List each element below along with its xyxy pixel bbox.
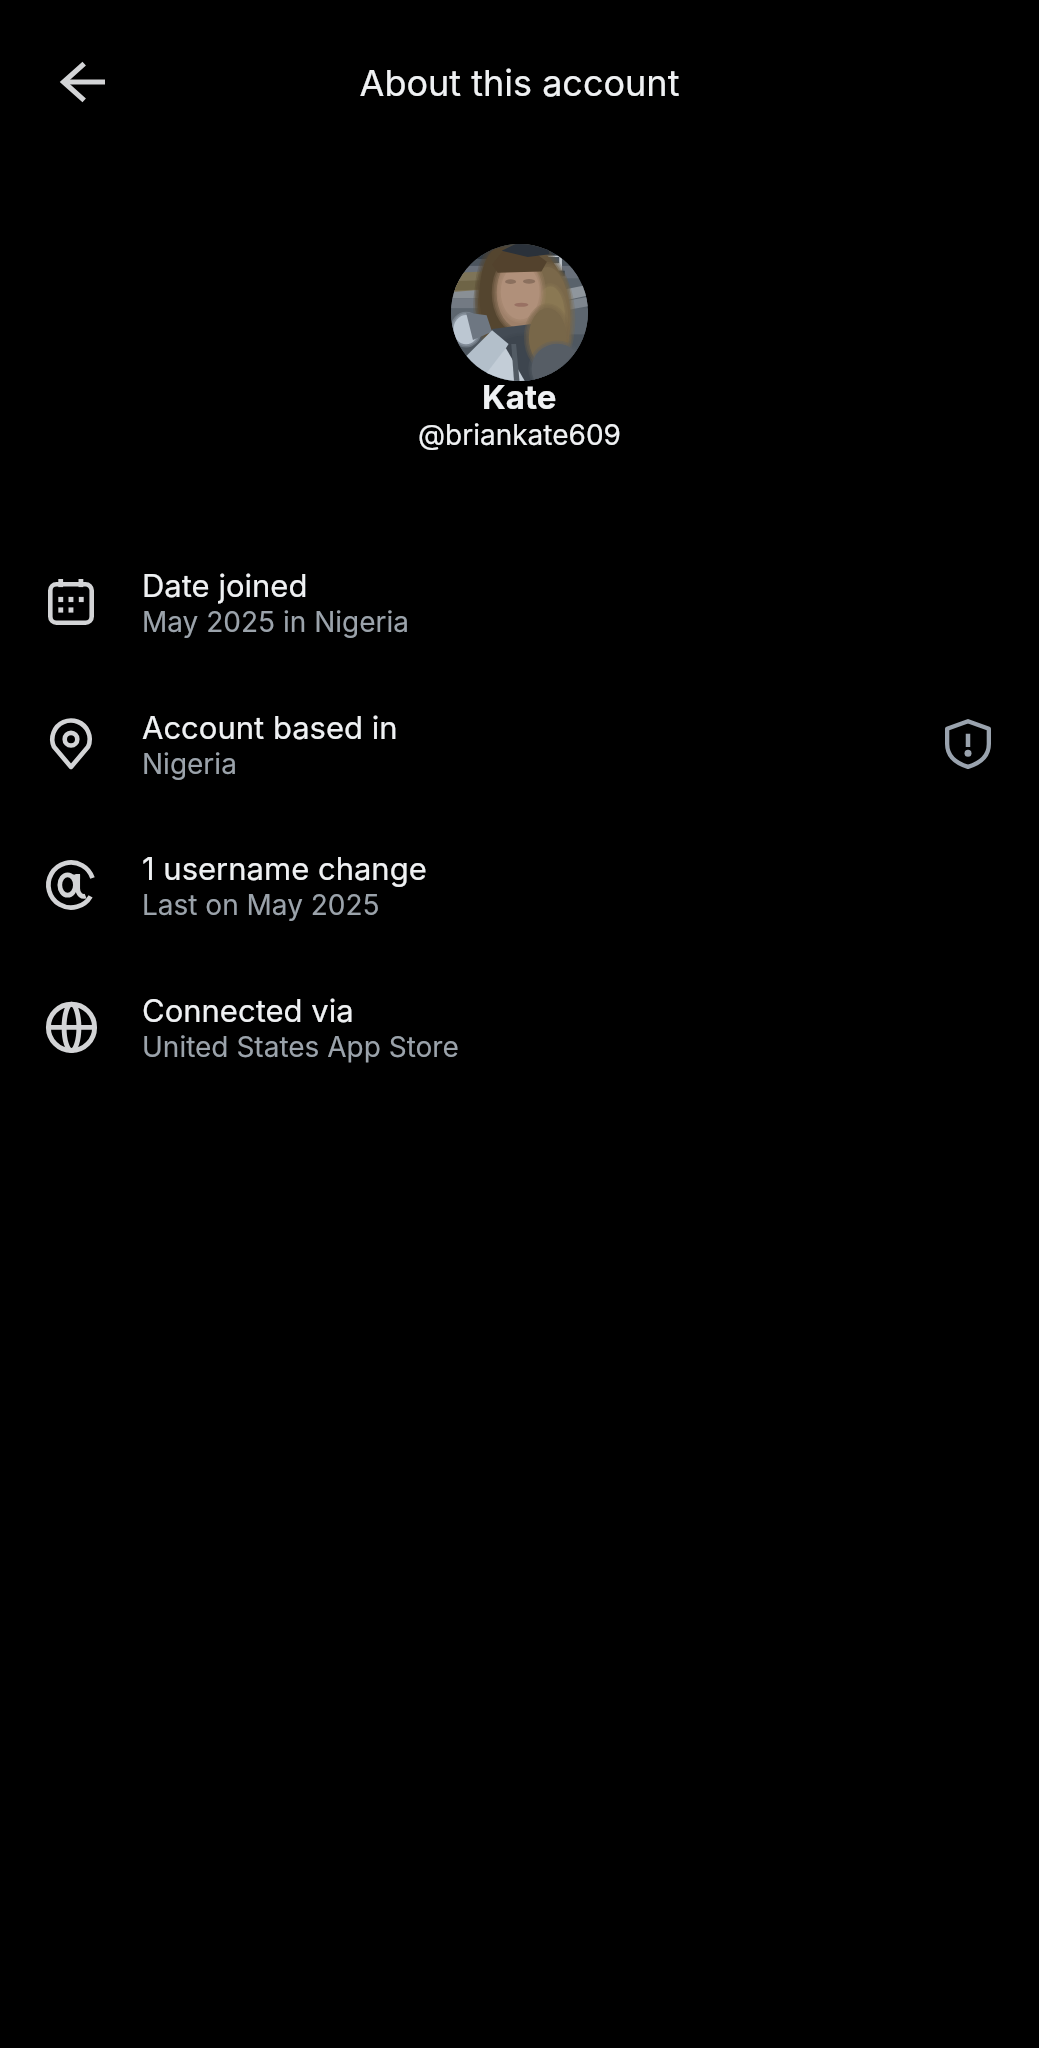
button[interactable]: Date joined — [0, 531, 1039, 672]
button[interactable]: 1 username change — [0, 814, 1039, 955]
staticText: @briankate609 — [418, 418, 621, 452]
button[interactable]: Back — [50, 47, 120, 117]
staticText: Date joined — [142, 567, 308, 605]
button[interactable]: Profile photo — [451, 244, 588, 381]
staticText: Kate — [482, 377, 557, 417]
staticText: Last on May 2025 — [142, 888, 380, 922]
staticText: Nigeria — [142, 747, 237, 781]
staticText: About this account — [0, 61, 1039, 105]
staticText: May 2025 in Nigeria — [142, 605, 409, 639]
button[interactable]: Connected via — [0, 956, 1039, 1097]
button[interactable]: Account location label — [936, 712, 1000, 776]
staticText: Account based in — [142, 709, 398, 747]
button[interactable]: Account based in — [0, 673, 1039, 814]
staticText: Connected via — [142, 992, 354, 1030]
staticText: United States App Store — [142, 1030, 459, 1064]
staticText: 1 username change — [142, 850, 427, 888]
